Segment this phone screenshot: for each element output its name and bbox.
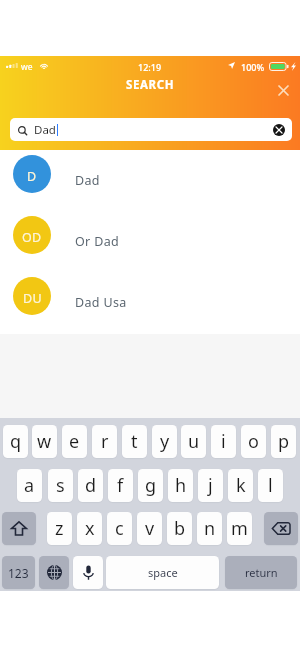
staticText: e — [69, 429, 80, 454]
button[interactable]: n — [197, 512, 222, 545]
button[interactable]: e — [62, 425, 87, 458]
button[interactable]: h — [168, 469, 193, 502]
staticText: OD — [22, 229, 42, 246]
staticText: z — [55, 516, 64, 541]
button[interactable]: l — [258, 469, 283, 502]
staticText: o — [248, 429, 259, 454]
staticText: Dad — [75, 172, 100, 189]
button[interactable]: r — [92, 425, 117, 458]
staticText: l — [268, 473, 273, 498]
button[interactable]: D — [0, 150, 300, 211]
button[interactable]: x — [77, 512, 102, 545]
button[interactable]: space — [106, 556, 219, 589]
button[interactable]: g — [138, 469, 163, 502]
staticText: m — [231, 516, 248, 541]
button[interactable]: v — [137, 512, 162, 545]
staticText: t — [131, 429, 138, 454]
staticText: q — [10, 429, 22, 454]
staticText: i — [221, 429, 226, 454]
button[interactable]: m — [227, 512, 252, 545]
button[interactable]: d — [78, 469, 103, 502]
button[interactable]: p — [271, 425, 296, 458]
button[interactable]: Dictation — [73, 556, 103, 589]
staticText: v — [145, 516, 155, 541]
staticText: return — [245, 565, 278, 580]
button[interactable]: o — [241, 425, 266, 458]
staticText: DU — [23, 290, 42, 307]
button[interactable]: OD — [0, 211, 300, 272]
button[interactable]: w — [32, 425, 57, 458]
staticText: we — [21, 61, 33, 73]
button[interactable]: k — [228, 469, 253, 502]
staticText: u — [188, 429, 200, 454]
staticText: Dad — [34, 122, 56, 138]
button[interactable]: Clear text — [273, 124, 285, 136]
button[interactable]: t — [122, 425, 147, 458]
staticText: f — [117, 473, 124, 498]
staticText: SEARCH — [126, 77, 175, 93]
button[interactable]: return — [225, 556, 297, 589]
staticText: w — [37, 429, 52, 454]
button[interactable]: Dad — [10, 118, 292, 141]
button[interactable]: c — [107, 512, 132, 545]
button[interactable]: Close — [272, 79, 294, 101]
staticText: space — [148, 565, 178, 580]
staticText: D — [27, 168, 37, 185]
staticText: r — [101, 429, 109, 454]
button[interactable]: s — [48, 469, 73, 502]
staticText: d — [85, 473, 97, 498]
staticText: x — [85, 516, 95, 541]
button[interactable]: Switch keyboard — [39, 556, 69, 589]
staticText: j — [208, 473, 213, 498]
button[interactable]: j — [198, 469, 223, 502]
staticText: h — [175, 473, 187, 498]
button[interactable]: i — [211, 425, 236, 458]
staticText: b — [174, 516, 186, 541]
button[interactable]: Backspace — [264, 512, 298, 545]
staticText: Dad Usa — [75, 294, 127, 311]
button[interactable]: u — [181, 425, 206, 458]
staticText: 12:19 — [138, 61, 162, 73]
button[interactable]: y — [152, 425, 177, 458]
staticText: n — [204, 516, 216, 541]
button[interactable]: a — [17, 469, 42, 502]
staticText: 123 — [8, 565, 29, 581]
button[interactable]: f — [108, 469, 133, 502]
staticText: 100% — [241, 61, 265, 73]
staticText: a — [24, 473, 35, 498]
staticText: s — [56, 473, 65, 498]
staticText: Or Dad — [75, 233, 120, 250]
button[interactable]: z — [47, 512, 72, 545]
staticText: p — [278, 429, 290, 454]
button[interactable]: b — [167, 512, 192, 545]
button[interactable]: 123 — [2, 556, 35, 589]
button[interactable]: Shift — [2, 512, 36, 545]
staticText: g — [145, 473, 157, 498]
button[interactable]: q — [3, 425, 28, 458]
staticText: y — [160, 429, 170, 454]
staticText: c — [115, 516, 124, 541]
staticText: k — [236, 473, 246, 498]
button[interactable]: DU — [0, 272, 300, 333]
